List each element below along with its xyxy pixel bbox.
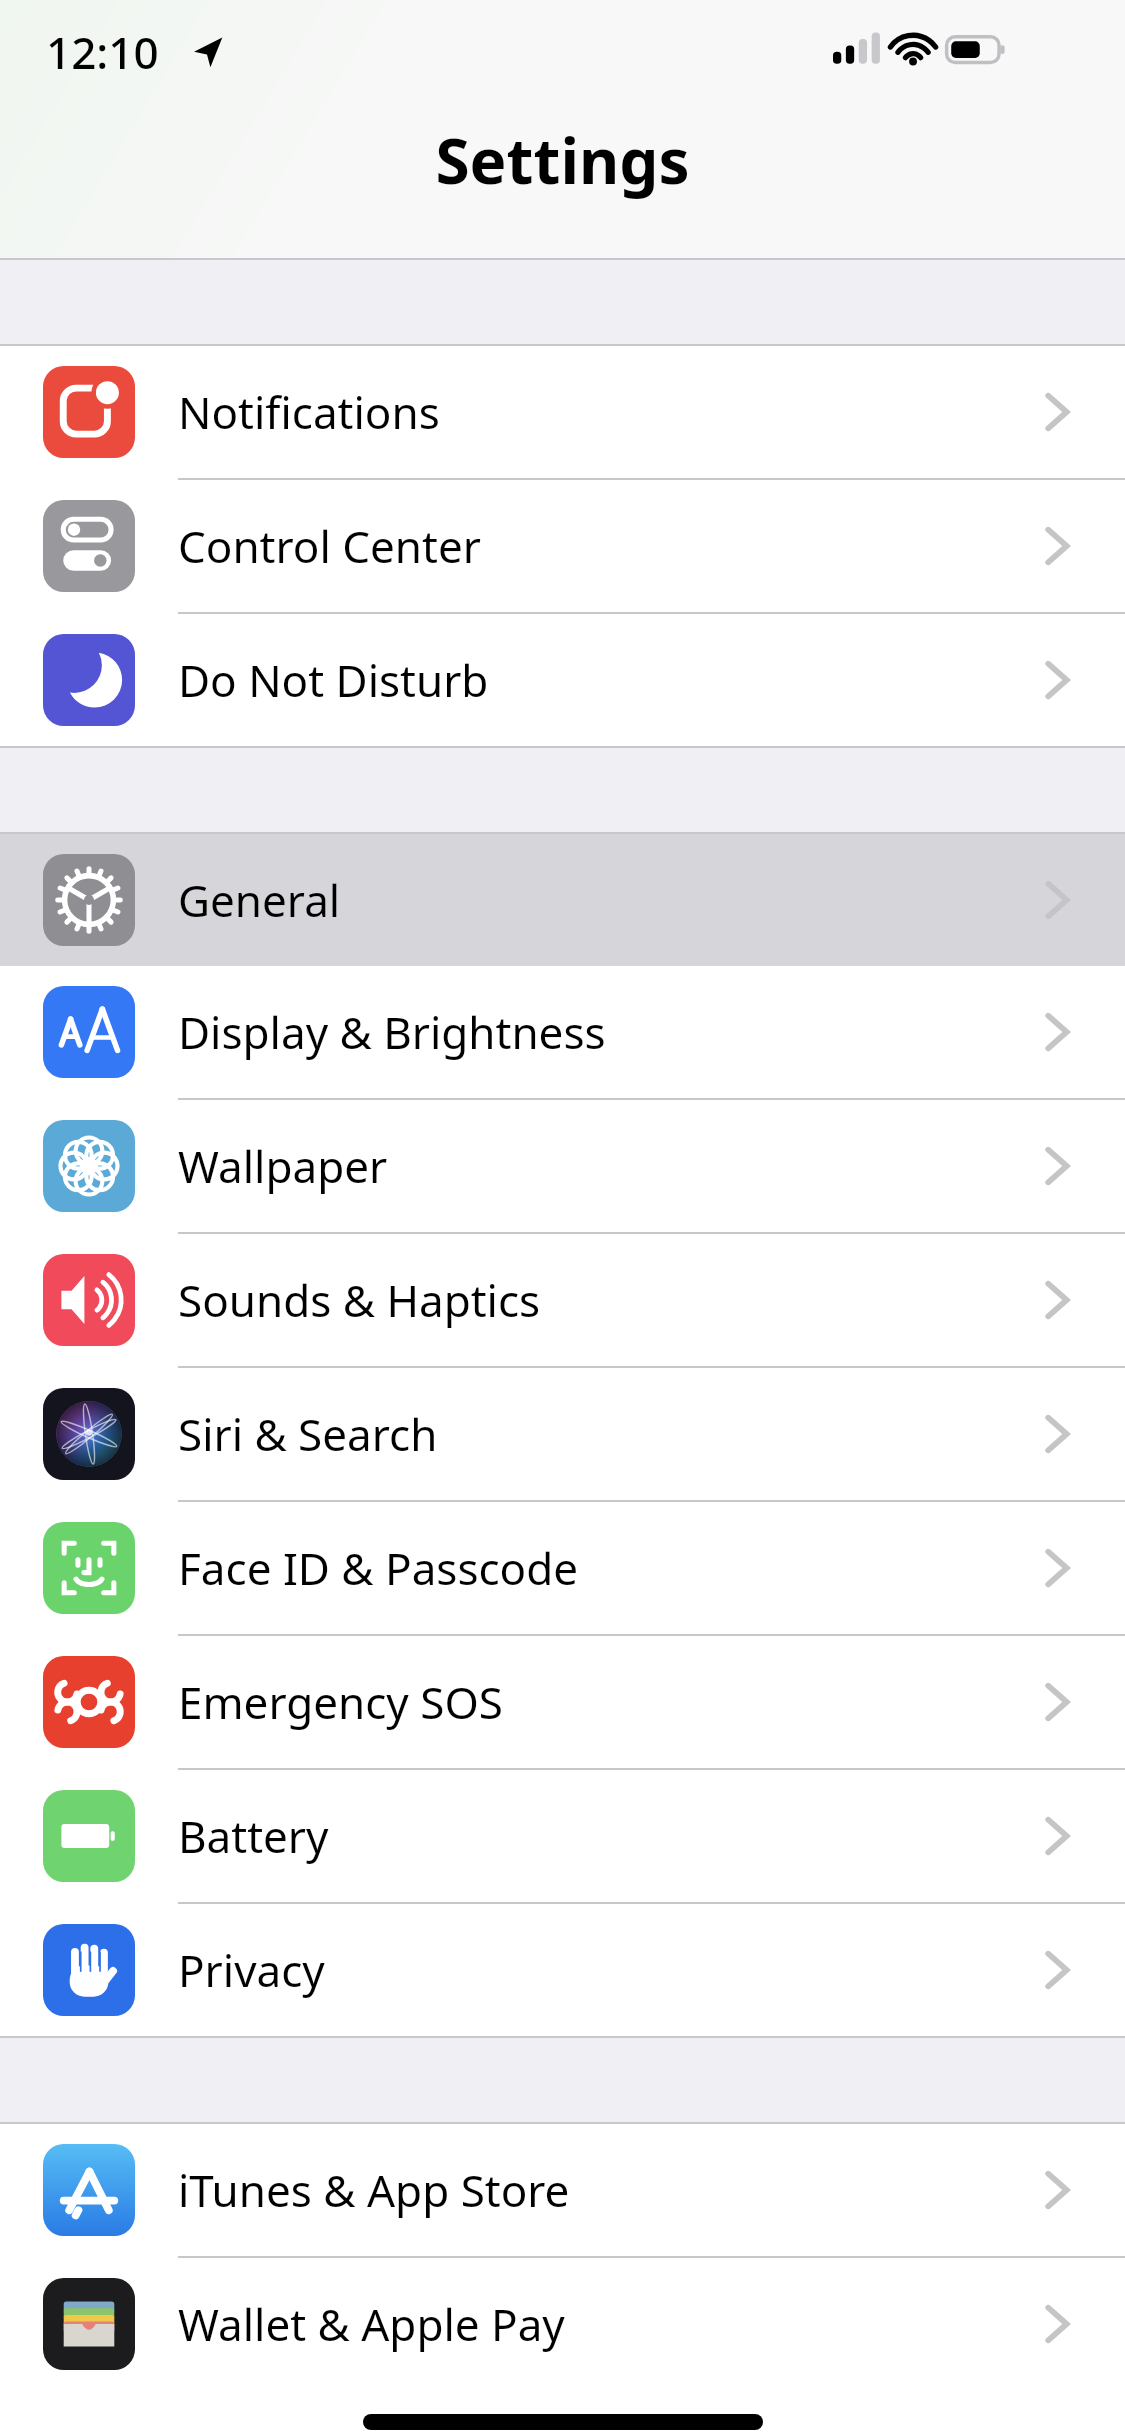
button[interactable]: iTunes & App Store [0,2124,1125,2256]
staticText: Wallet & Apple Pay [178,2294,1035,2354]
button[interactable]: Battery [0,1770,1125,1902]
staticText: Settings [0,118,1125,202]
button[interactable]: Notifications [0,346,1125,478]
button[interactable]: Privacy [0,1904,1125,2036]
button[interactable]: Display & Brightness [0,966,1125,1098]
staticText: 12:10 [46,22,159,82]
staticText: General [178,870,1035,930]
button[interactable]: Emergency SOS [0,1636,1125,1768]
button[interactable]: Control Center [0,480,1125,612]
button[interactable]: Sounds & Haptics [0,1234,1125,1366]
staticText: Siri & Search [178,1404,1035,1464]
staticText: Control Center [178,516,1035,576]
staticText: Privacy [178,1940,1035,2000]
staticText: Display & Brightness [178,1002,1035,1062]
staticText: Emergency SOS [178,1672,1035,1732]
button[interactable]: Face ID & Passcode [0,1502,1125,1634]
staticText: Battery [178,1806,1035,1866]
button[interactable]: General [0,834,1125,966]
staticText: Do Not Disturb [178,650,1035,710]
staticText: Sounds & Haptics [178,1270,1035,1330]
button[interactable]: Wallpaper [0,1100,1125,1232]
button[interactable]: Siri & Search [0,1368,1125,1500]
button[interactable]: Wallet & Apple Pay [0,2258,1125,2390]
staticText: Wallpaper [178,1136,1035,1196]
staticText: iTunes & App Store [178,2160,1035,2220]
staticText: Face ID & Passcode [178,1538,1035,1598]
staticText: Notifications [178,382,1035,442]
button[interactable]: Do Not Disturb [0,614,1125,746]
